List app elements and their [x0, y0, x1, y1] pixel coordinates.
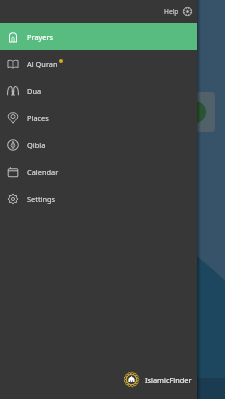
- staticText: Calendar: [27, 167, 59, 177]
- button[interactable]: Qibla: [0, 131, 197, 158]
- staticText: Help: [164, 7, 179, 16]
- button[interactable]: Places: [0, 104, 197, 131]
- button[interactable]: Prayers: [0, 23, 197, 50]
- button[interactable]: Help: [161, 4, 196, 19]
- button[interactable]: Settings: [0, 185, 197, 212]
- staticText: Places: [27, 113, 49, 123]
- staticText: Qibla: [27, 140, 46, 150]
- staticText: Prayers: [27, 32, 54, 42]
- staticText: Settings: [27, 194, 56, 204]
- button[interactable]: Al Quran: [0, 50, 197, 77]
- staticText: Al Quran: [27, 59, 58, 69]
- staticText: Dua: [27, 86, 42, 96]
- button[interactable]: Calendar: [0, 158, 197, 185]
- staticText: IslamicFinder: [145, 375, 192, 385]
- button[interactable]: Dua: [0, 77, 197, 104]
